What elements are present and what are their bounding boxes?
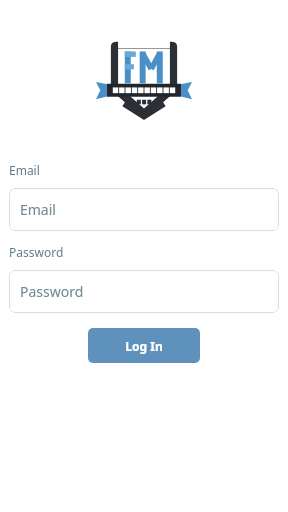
button[interactable]: Log In (88, 328, 200, 363)
staticText: Email (20, 200, 56, 219)
button[interactable]: Email (9, 188, 279, 231)
button[interactable]: Password (9, 270, 279, 313)
staticText: Log In (125, 338, 163, 354)
staticText: Password (20, 282, 84, 301)
other: FM Contractor App logo (96, 38, 192, 122)
staticText: Password (9, 244, 64, 260)
staticText: Email (9, 162, 40, 178)
